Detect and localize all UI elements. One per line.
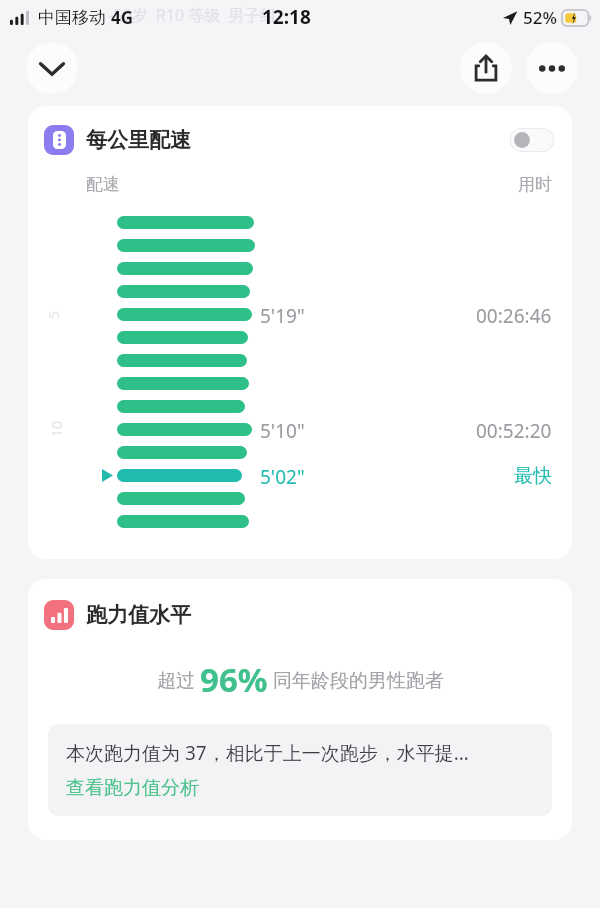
- button[interactable]: [28, 441, 572, 464]
- button[interactable]: [28, 487, 572, 510]
- button[interactable]: [28, 234, 572, 257]
- button[interactable]: Share: [460, 42, 512, 94]
- staticText: 52%: [523, 6, 557, 29]
- button[interactable]: [28, 395, 572, 418]
- button[interactable]: [28, 349, 572, 372]
- button[interactable]: More options: [526, 42, 578, 94]
- staticText: 96%: [200, 657, 268, 702]
- button[interactable]: 5'10": [28, 418, 572, 441]
- staticText: 用时: [518, 174, 552, 195]
- staticText: -50岁 R10 等级 男子组: [108, 4, 277, 26]
- staticText: 超过: [157, 667, 200, 693]
- staticText: 10: [47, 420, 66, 437]
- staticText: 12:18: [262, 4, 311, 30]
- button[interactable]: Collapse: [26, 42, 78, 94]
- staticText: 00:52:20: [476, 418, 552, 441]
- staticText: 同年龄段的男性跑者: [268, 667, 444, 693]
- staticText: 5'02": [260, 464, 305, 487]
- button[interactable]: [28, 326, 572, 349]
- button[interactable]: 本次跑力值为 37，相比于上一次跑步，水平提…: [48, 724, 552, 816]
- button[interactable]: [28, 280, 572, 303]
- staticText: 5'10": [260, 418, 305, 441]
- button[interactable]: 5'02": [28, 464, 572, 487]
- button[interactable]: Toggle pace chart: [510, 128, 554, 152]
- staticText: 查看跑力值分析: [66, 776, 199, 800]
- staticText: 最快: [514, 464, 552, 487]
- button[interactable]: [28, 211, 572, 234]
- staticText: 配速: [86, 174, 120, 195]
- staticText: 00:26:46: [476, 303, 552, 326]
- staticText: 每公里配速: [86, 127, 191, 153]
- staticText: 跑力值水平: [86, 602, 191, 628]
- staticText: 本次跑力值为 37，相比于上一次跑步，水平提…: [66, 740, 469, 766]
- staticText: 5: [44, 310, 63, 319]
- button[interactable]: [28, 372, 572, 395]
- staticText: 中国移动: [38, 7, 106, 28]
- staticText: 4G: [111, 6, 134, 29]
- button[interactable]: 5'19": [28, 303, 572, 326]
- staticText: 5'19": [260, 303, 305, 326]
- button[interactable]: [28, 510, 572, 533]
- button[interactable]: [28, 257, 572, 280]
